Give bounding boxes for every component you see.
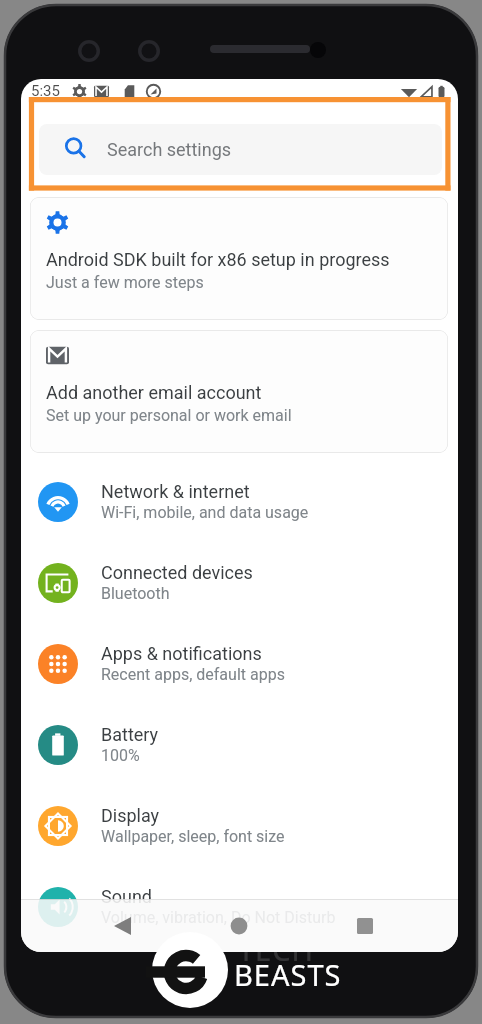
staticText: Wallpaper, sleep, font size bbox=[101, 827, 285, 846]
staticText: Connected devices bbox=[101, 562, 253, 583]
button[interactable]: Recent apps bbox=[347, 899, 383, 952]
staticText: Volume, vibration, Do Not Disturb bbox=[101, 908, 336, 927]
staticText: Add another email account bbox=[46, 382, 262, 403]
staticText: Recent apps, default apps bbox=[101, 665, 285, 684]
staticText: Network & internet bbox=[101, 481, 250, 502]
staticText: TECH bbox=[238, 930, 315, 969]
button[interactable]: Home bbox=[221, 899, 257, 952]
staticText: 5:35 bbox=[31, 82, 60, 100]
staticText: Wi-Fi, mobile, and data usage bbox=[101, 503, 309, 522]
staticText: Apps & notifications bbox=[101, 643, 262, 664]
button[interactable]: Search settings bbox=[39, 124, 442, 175]
button[interactable]: Connected devices bbox=[21, 542, 458, 623]
staticText: Just a few more steps bbox=[46, 273, 204, 292]
staticText: Set up your personal or work email bbox=[46, 406, 292, 425]
staticText: Bluetooth bbox=[101, 584, 170, 603]
button[interactable]: Battery bbox=[21, 704, 458, 785]
staticText: Battery bbox=[101, 724, 159, 745]
staticText: BEASTS bbox=[234, 955, 342, 994]
staticText: 100% bbox=[101, 746, 140, 765]
staticText: Android SDK built for x86 setup in progr… bbox=[46, 249, 390, 270]
button[interactable]: Add another email account bbox=[30, 330, 448, 453]
staticText: Search settings bbox=[107, 139, 232, 160]
staticText: Display bbox=[101, 805, 160, 826]
button[interactable]: Android SDK built for x86 setup in progr… bbox=[30, 197, 448, 320]
button[interactable]: Network & internet bbox=[21, 461, 458, 542]
button[interactable]: Sound bbox=[21, 866, 458, 947]
staticText: Sound bbox=[101, 886, 152, 907]
button[interactable]: Apps & notifications bbox=[21, 623, 458, 704]
button[interactable]: Display bbox=[21, 785, 458, 866]
button[interactable]: Back bbox=[104, 899, 140, 952]
